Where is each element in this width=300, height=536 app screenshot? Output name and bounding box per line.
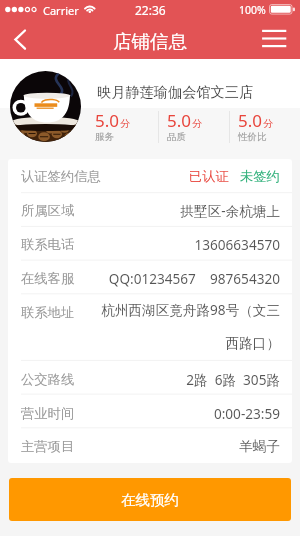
staticText: 营业时间 bbox=[21, 405, 75, 422]
staticText: QQ:01234567 987654320 bbox=[81, 269, 280, 288]
staticText: 店铺信息 bbox=[113, 30, 187, 53]
staticText: 5.0 bbox=[167, 109, 192, 132]
staticText: 已认证 bbox=[189, 168, 229, 185]
staticText: 2路 6路 305路 bbox=[81, 370, 280, 389]
staticText: 联系电话 bbox=[21, 236, 75, 253]
staticText: 服务 bbox=[95, 131, 114, 143]
button[interactable]: 在线预约 bbox=[9, 478, 291, 521]
staticText: 公交路线 bbox=[21, 371, 75, 388]
staticText: 13606634570 bbox=[81, 235, 280, 254]
button[interactable]: Back bbox=[0, 20, 40, 59]
staticText: 分 bbox=[120, 117, 130, 130]
staticText: 100% bbox=[239, 3, 266, 17]
staticText: 5.0 bbox=[238, 109, 263, 132]
staticText: 杭州西湖区竟舟路98号（文三 西路口） bbox=[81, 300, 280, 352]
staticText: 分 bbox=[263, 117, 273, 130]
button[interactable]: 营业时间 bbox=[8, 396, 292, 430]
staticText: 映月静莲瑜伽会馆文三店 bbox=[97, 83, 254, 101]
button[interactable]: 公交路线 bbox=[8, 362, 292, 396]
staticText: 在线客服 bbox=[21, 270, 75, 287]
staticText: 认证签约信息 bbox=[21, 168, 101, 185]
staticText: 性价比 bbox=[238, 131, 267, 143]
button[interactable]: 在线客服 bbox=[8, 261, 292, 295]
staticText: 拱墅区-余杭塘上 bbox=[81, 201, 280, 220]
button[interactable]: 认证签约信息 bbox=[8, 159, 292, 193]
staticText: 5.0 bbox=[95, 109, 120, 132]
button[interactable]: 联系电话 bbox=[8, 227, 292, 261]
staticText: 22:36 bbox=[135, 2, 166, 18]
staticText: 所属区域 bbox=[21, 202, 75, 219]
staticText: 主营项目 bbox=[21, 438, 75, 455]
staticText: 未签约 bbox=[240, 168, 280, 185]
staticText: 联系地址 bbox=[21, 304, 75, 321]
button[interactable]: 所属区域 bbox=[8, 193, 292, 227]
button[interactable]: 联系地址 bbox=[8, 295, 292, 362]
staticText: 分 bbox=[192, 117, 202, 130]
staticText: 在线预约 bbox=[121, 491, 179, 509]
staticText: 品质 bbox=[167, 131, 186, 143]
button[interactable]: Menu bbox=[260, 20, 300, 59]
staticText: Carrier bbox=[43, 3, 79, 18]
button[interactable]: 主营项目 bbox=[8, 430, 292, 463]
staticText: 0:00-23:59 bbox=[81, 404, 280, 423]
staticText: 羊蝎子 bbox=[81, 438, 280, 455]
